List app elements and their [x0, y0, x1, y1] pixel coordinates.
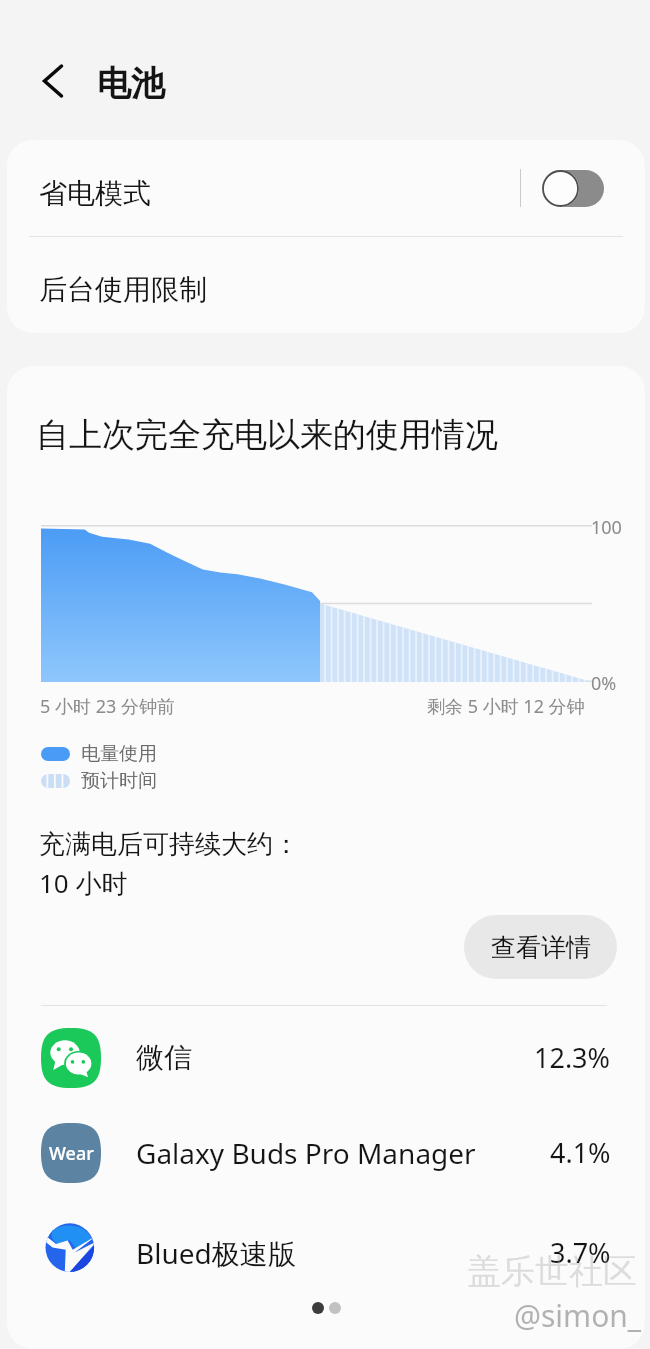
staticText: 自上次完全充电以来的使用情况 [36, 414, 498, 456]
staticText: Galaxy Buds Pro Manager [136, 1134, 476, 1172]
staticText: 充满电后可持续大约： [39, 828, 299, 861]
button[interactable]: 查看详情 [464, 915, 617, 979]
button[interactable]: 省电模式 [7, 140, 645, 236]
staticText: 0% [591, 671, 617, 696]
button[interactable]: Blued极速版 [7, 1206, 645, 1299]
staticText: Blued极速版 [136, 1234, 296, 1272]
staticText: 盖乐世社区 [467, 1250, 637, 1293]
staticText: @simon_ [514, 1295, 642, 1336]
staticText: 电池 [97, 62, 165, 105]
button[interactable]: 后台使用限制 [7, 236, 645, 332]
staticText: 4.1% [550, 1134, 611, 1171]
button[interactable]: Wear [7, 1106, 645, 1199]
staticText: Wear [49, 1141, 94, 1166]
staticText: 电量使用 [81, 742, 157, 766]
staticText: 10 小时 [39, 865, 128, 901]
staticText: 12.3% [534, 1039, 611, 1076]
staticText: 省电模式 [39, 176, 151, 211]
staticText: 100 [591, 515, 622, 540]
button[interactable]: 微信 [7, 1011, 645, 1104]
staticText: 后台使用限制 [39, 272, 207, 307]
staticText: 5 小时 23 分钟前 [40, 694, 175, 719]
staticText: 3.7% [550, 1234, 611, 1271]
staticText: 微信 [136, 1040, 192, 1075]
staticText: 预计时间 [81, 769, 157, 793]
staticText: 剩余 5 小时 12 分钟 [427, 694, 585, 719]
staticText: 查看详情 [491, 932, 591, 963]
button[interactable]: Power saving mode toggle [542, 170, 604, 207]
button[interactable]: Back [28, 57, 76, 105]
